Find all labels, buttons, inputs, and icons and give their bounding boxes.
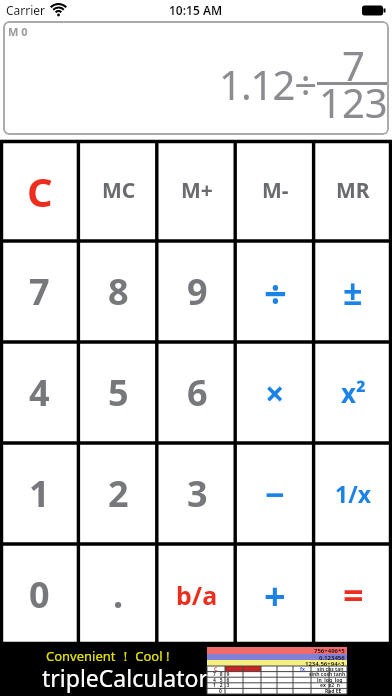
button[interactable]: b/a xyxy=(158,544,236,645)
staticText: 10:15 AM xyxy=(169,2,223,18)
button[interactable]: 3 xyxy=(158,443,236,544)
staticText: = xyxy=(343,570,364,619)
staticText: Convenient ！ Cool ! xyxy=(46,647,170,665)
button[interactable]: × xyxy=(236,342,314,443)
button[interactable]: M+ xyxy=(158,140,236,241)
staticText: x² xyxy=(341,375,366,410)
button[interactable]: 5 xyxy=(79,342,158,443)
button[interactable]: MC xyxy=(79,140,158,241)
staticText: 3 xyxy=(187,469,208,518)
button[interactable]: M- xyxy=(236,140,314,241)
staticText: ÷ xyxy=(264,265,287,319)
staticText: ln log log xyxy=(317,677,343,684)
staticText: 0.123456 xyxy=(319,654,345,662)
staticText: 2 xyxy=(108,469,129,518)
staticText: 4 5 6 xyxy=(213,677,230,684)
staticText: 1234.56+94^3 xyxy=(305,660,345,668)
staticText: MR xyxy=(336,176,370,205)
staticText: M+ xyxy=(181,176,213,205)
button[interactable]: 1 xyxy=(0,443,79,544)
button[interactable]: MR xyxy=(314,140,392,241)
button[interactable]: C xyxy=(0,140,79,241)
button[interactable]: = xyxy=(314,544,392,645)
button[interactable]: 4 xyxy=(0,342,79,443)
button[interactable]: 7 xyxy=(0,241,79,342)
staticText: Rad EE xyxy=(325,688,342,695)
staticText: 7 xyxy=(29,267,50,316)
button[interactable]: ÷ xyxy=(236,241,314,342)
button[interactable]: + xyxy=(236,544,314,645)
staticText: 1 xyxy=(29,469,50,518)
staticText: 6 xyxy=(187,368,208,417)
staticText: 5 xyxy=(108,368,129,417)
staticText: fx xyxy=(300,666,305,673)
staticText: M 0 xyxy=(8,24,28,39)
button[interactable]: − xyxy=(236,443,314,544)
staticText: sin cos tan xyxy=(317,666,344,673)
staticText: 4 xyxy=(29,368,50,417)
staticText: . xyxy=(113,570,124,619)
button[interactable]: Convenient ！ Cool ! xyxy=(0,645,392,696)
staticText: 7 8 9 xyxy=(213,671,230,678)
staticText: 0 xyxy=(219,688,222,695)
staticText: MC xyxy=(102,176,136,205)
staticText: − xyxy=(265,471,285,517)
button[interactable]: x² xyxy=(314,342,392,443)
staticText: M- xyxy=(262,176,289,205)
staticText: 0 xyxy=(29,570,50,619)
staticText: 8 xyxy=(108,267,129,316)
button[interactable]: 1/x xyxy=(314,443,392,544)
staticText: ± xyxy=(343,269,363,315)
staticText: ex x2 n xyxy=(320,682,340,689)
staticText: 756+496*5 xyxy=(314,647,345,655)
button[interactable]: . xyxy=(79,544,158,645)
staticText: × xyxy=(265,370,285,416)
staticText: C xyxy=(27,164,53,218)
staticText: 123 xyxy=(319,75,388,129)
staticText: 1/x xyxy=(335,478,371,509)
staticText: 1 2 3 xyxy=(213,682,230,689)
staticText: 7 xyxy=(342,38,365,92)
button[interactable]: 0 xyxy=(0,544,79,645)
button[interactable]: ± xyxy=(314,241,392,342)
staticText: + xyxy=(264,569,286,621)
button[interactable]: 6 xyxy=(158,342,236,443)
staticText: 1.12÷ xyxy=(219,57,317,111)
staticText: C xyxy=(214,666,218,673)
button[interactable]: 8 xyxy=(79,241,158,342)
staticText: 9 xyxy=(187,267,208,316)
staticText: Carrier xyxy=(6,2,46,18)
staticText: sinh cosh tanh xyxy=(309,671,346,678)
button[interactable]: 2 xyxy=(79,443,158,544)
staticText: tripleCalculator xyxy=(42,662,208,693)
button[interactable]: 9 xyxy=(158,241,236,342)
staticText: b/a xyxy=(176,578,218,612)
